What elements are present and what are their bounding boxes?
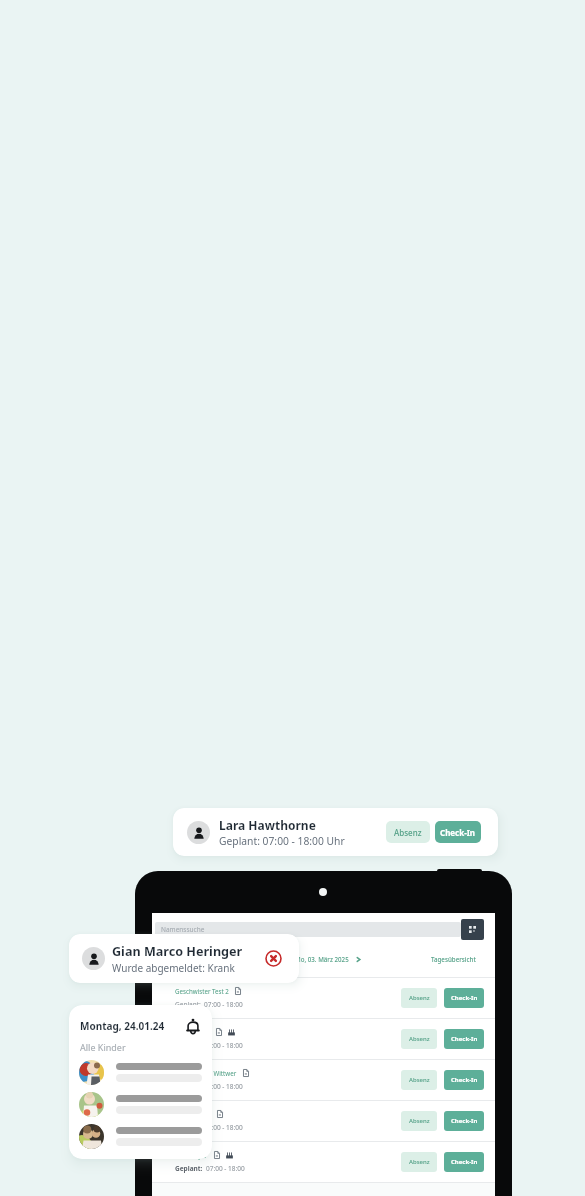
button[interactable]: Tagesübersicht bbox=[431, 955, 476, 963]
button[interactable]: Abgemeldet bbox=[265, 950, 282, 967]
staticText: Absenz bbox=[409, 1035, 430, 1043]
staticText: Geplant: 07:00 - 18:00 Uhr bbox=[219, 834, 345, 848]
staticText: Mo, 03. März 2025 bbox=[295, 955, 349, 963]
staticText: Absenz bbox=[409, 994, 430, 1002]
button[interactable]: Check-In bbox=[444, 1029, 484, 1049]
staticText: Gian Marco Heringer bbox=[112, 943, 243, 960]
staticText: Paul Meyer bbox=[175, 1151, 208, 1159]
staticText: Check-In bbox=[451, 1076, 478, 1084]
staticText: Absenz bbox=[409, 1076, 430, 1084]
staticText: Montag, 24.01.24 bbox=[80, 1019, 165, 1033]
staticText: Absenz bbox=[409, 1158, 430, 1166]
staticText: Ben (Bruder) Wittwer bbox=[175, 1069, 237, 1077]
staticText: Check-In bbox=[451, 1035, 478, 1043]
button[interactable]: Absenz bbox=[401, 1029, 437, 1049]
staticText: Absenz bbox=[394, 827, 422, 838]
staticText: Geplant: bbox=[175, 1123, 201, 1132]
button[interactable]: Absenz bbox=[401, 1111, 437, 1131]
staticText: Wurde abgemeldet: Krank bbox=[112, 961, 235, 975]
staticText: Geplant: bbox=[175, 1164, 203, 1173]
button[interactable]: Absenz bbox=[401, 988, 437, 1008]
staticText: Check-In bbox=[451, 994, 478, 1002]
button[interactable]: Namenssuche bbox=[155, 922, 461, 937]
staticText: Absenz bbox=[409, 1117, 430, 1125]
staticText: Geschwister Test 2 bbox=[175, 987, 229, 995]
button[interactable]: Check-In bbox=[444, 988, 484, 1008]
staticText: Namenssuche bbox=[161, 925, 205, 934]
staticText: Lena Müller bbox=[175, 1028, 210, 1036]
staticText: 07:00 - 18:00 bbox=[204, 1082, 243, 1091]
button[interactable]: Absenz bbox=[386, 821, 430, 843]
button[interactable]: Absenz bbox=[401, 1070, 437, 1090]
button[interactable]: Check-In bbox=[444, 1111, 484, 1131]
staticText: Geplant: bbox=[175, 1000, 201, 1009]
button[interactable]: QR Code scannen bbox=[461, 919, 484, 940]
staticText: Lara Hawthorne bbox=[219, 817, 316, 833]
staticText: Alle Kinder bbox=[80, 1041, 126, 1053]
staticText: 07:00 - 18:00 bbox=[204, 1000, 243, 1009]
button[interactable]: Lara Hawthorne bbox=[173, 808, 498, 856]
staticText: Nina Becker bbox=[175, 1110, 211, 1118]
staticText: Check-In bbox=[440, 827, 476, 838]
staticText: 07:00 - 18:00 bbox=[204, 1041, 243, 1050]
button[interactable]: Absenz bbox=[401, 1152, 437, 1172]
staticText: Check-In bbox=[451, 1117, 478, 1125]
button[interactable]: Check-In bbox=[444, 1070, 484, 1090]
staticText: 07:00 - 18:00 bbox=[206, 1164, 245, 1173]
button[interactable]: Check-In bbox=[444, 1152, 484, 1172]
button[interactable]: Benachrichtigungen bbox=[184, 1017, 202, 1035]
button[interactable]: Gian Marco Heringer bbox=[69, 934, 299, 983]
button[interactable]: Mo, 03. März 2025 bbox=[295, 955, 362, 963]
staticText: Check-In bbox=[451, 1158, 478, 1166]
staticText: 07:00 - 18:00 bbox=[204, 1123, 243, 1132]
button[interactable]: Check-In bbox=[435, 821, 481, 843]
